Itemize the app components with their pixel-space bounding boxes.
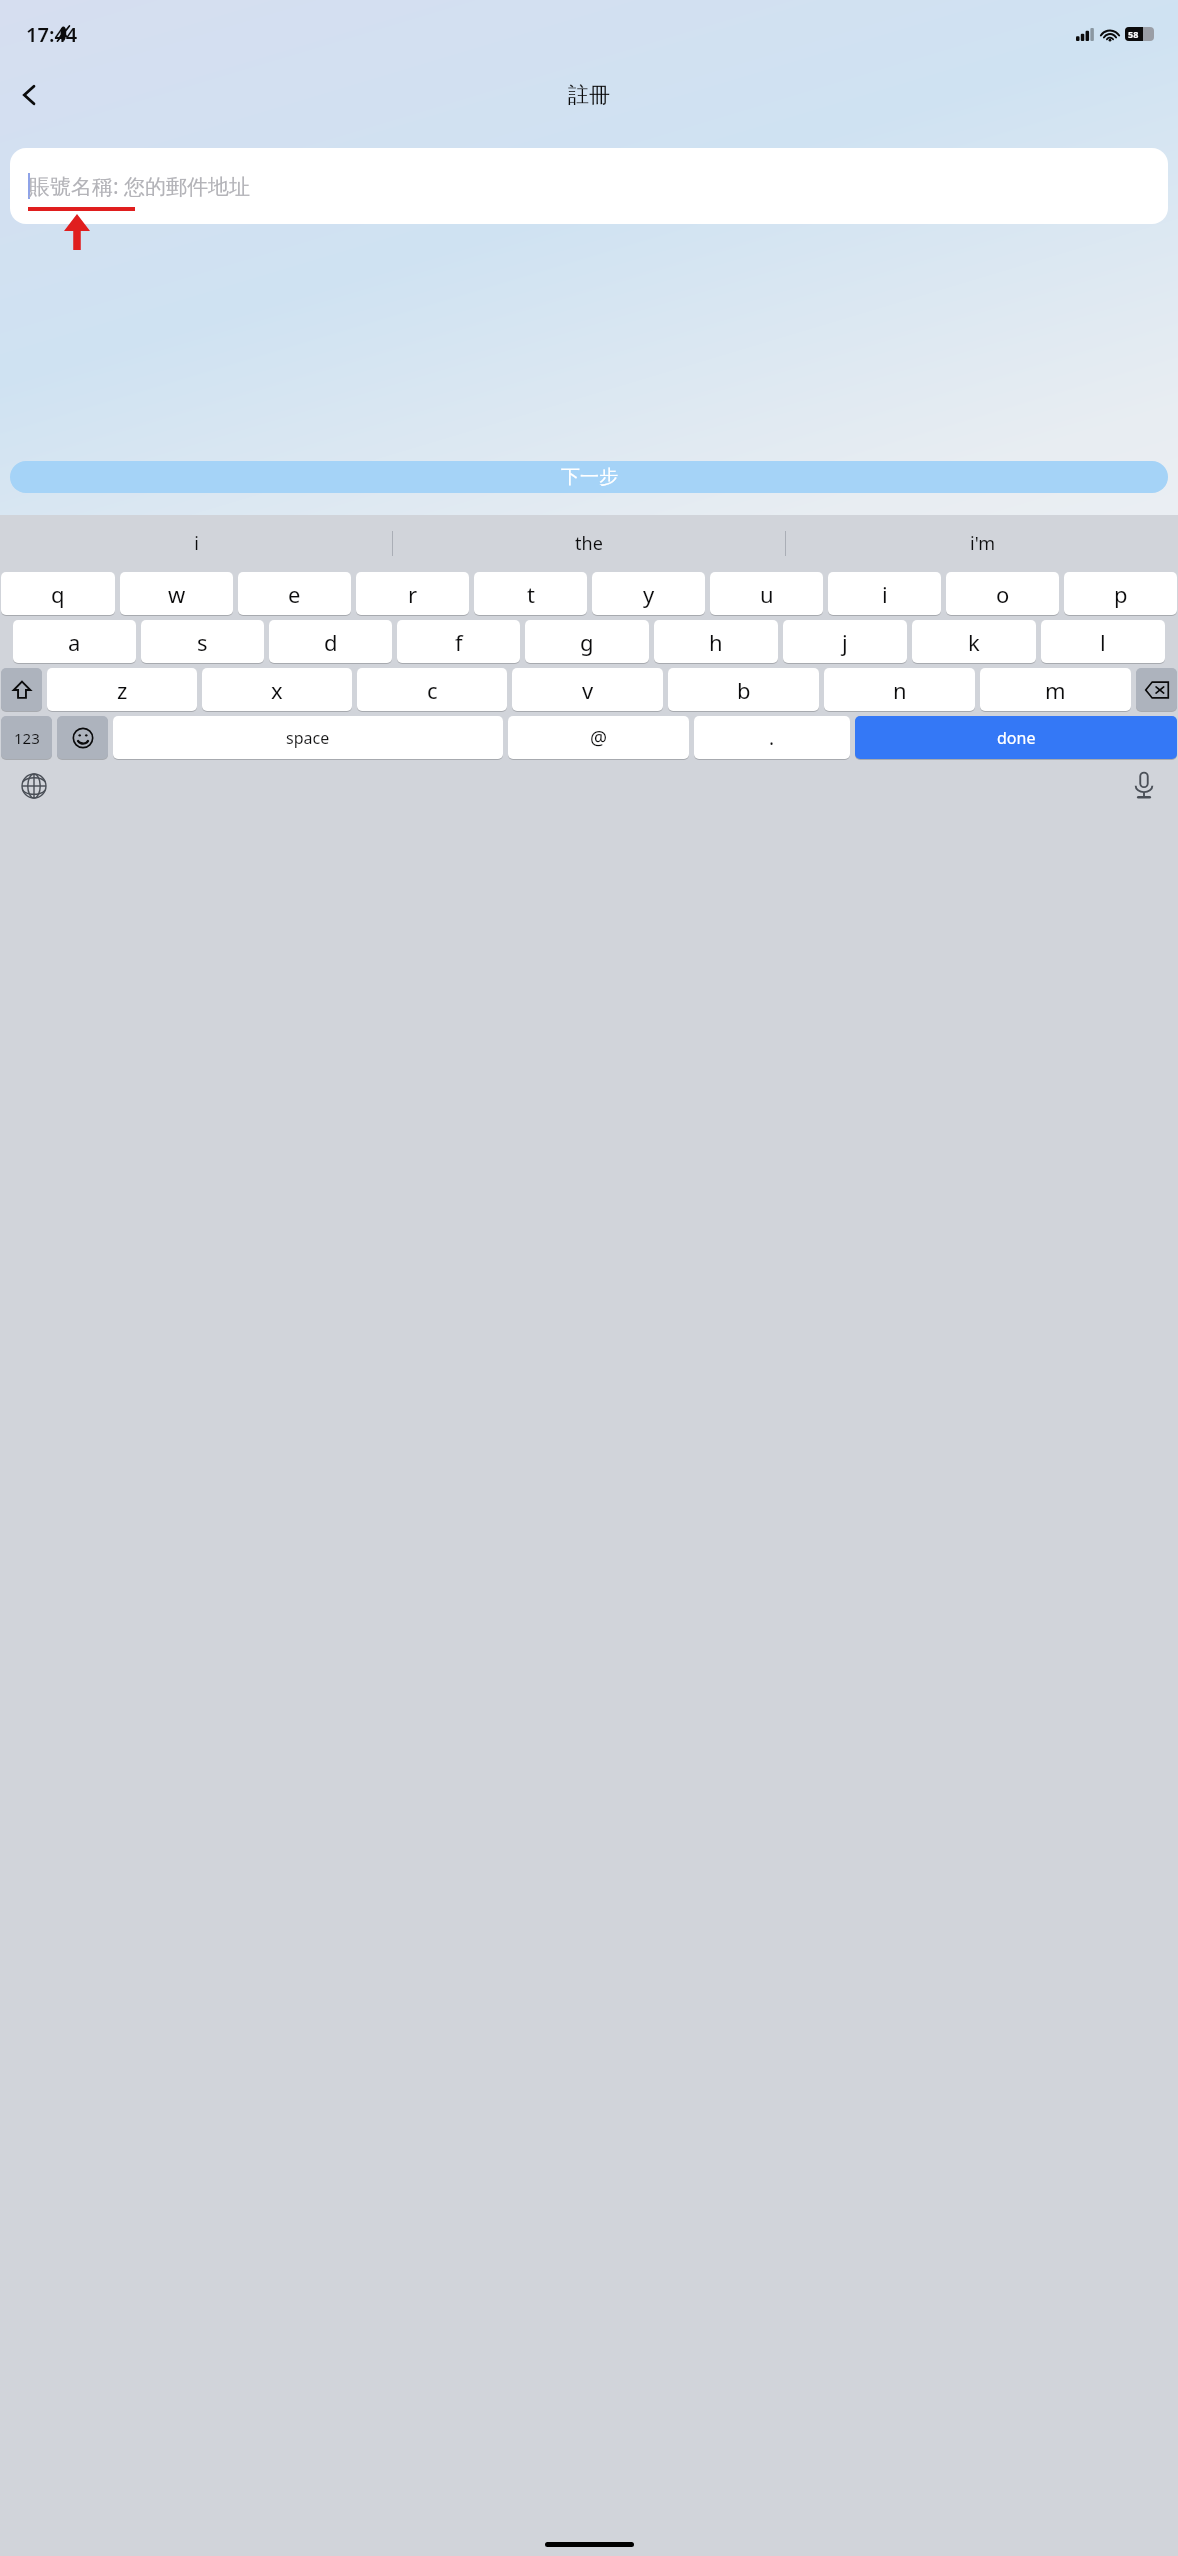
staticText: s [197, 627, 208, 657]
button[interactable]: Numbers [1, 716, 52, 759]
staticText: 下一步 [561, 465, 618, 489]
button[interactable]: 下一步 [10, 461, 1168, 493]
staticText: the [575, 531, 603, 556]
button[interactable]: s [141, 620, 264, 663]
staticText: 58 [1128, 28, 1139, 40]
button[interactable]: a [13, 620, 136, 663]
staticText: j [842, 627, 848, 657]
staticText: x [271, 675, 283, 705]
staticText: q [51, 579, 65, 609]
staticText: i'm [970, 531, 995, 556]
button[interactable]: x [202, 668, 352, 711]
button[interactable]: i [0, 515, 392, 572]
button[interactable]: c [357, 668, 507, 711]
button[interactable]: e [238, 572, 351, 615]
staticText: t [527, 579, 535, 609]
staticText: i [882, 579, 888, 609]
staticText: r [408, 579, 418, 609]
staticText: u [760, 579, 774, 609]
staticText: @ [590, 725, 608, 751]
button[interactable]: Change keyboard [12, 764, 56, 808]
staticText: w [168, 579, 186, 609]
button[interactable]: i'm [786, 515, 1178, 572]
staticText: 賬號名稱: 您的郵件地址 [29, 172, 251, 201]
button[interactable]: p [1064, 572, 1177, 615]
staticText: g [580, 627, 594, 657]
staticText: f [455, 627, 463, 657]
staticText: 17:44 [26, 21, 78, 48]
button[interactable]: u [710, 572, 823, 615]
button[interactable]: Dictate [1122, 764, 1166, 808]
button[interactable]: y [592, 572, 705, 615]
button[interactable]: h [654, 620, 778, 663]
staticText: b [737, 675, 751, 705]
button[interactable]: l [1041, 620, 1165, 663]
button[interactable]: done [855, 716, 1177, 759]
staticText: n [893, 675, 907, 705]
staticText: done [997, 727, 1036, 749]
button[interactable]: Backspace [1136, 668, 1177, 711]
staticText: 123 [14, 728, 40, 748]
staticText: z [117, 675, 128, 705]
button[interactable]: i [828, 572, 941, 615]
button[interactable]: d [269, 620, 392, 663]
staticText: o [996, 579, 1010, 609]
button[interactable]: Emoji [57, 716, 108, 759]
staticText: h [709, 627, 723, 657]
button[interactable]: o [946, 572, 1059, 615]
button[interactable]: m [980, 668, 1131, 711]
staticText: c [427, 675, 438, 705]
staticText: a [68, 627, 81, 657]
staticText: space [286, 727, 330, 749]
button[interactable]: j [783, 620, 907, 663]
staticText: m [1045, 675, 1066, 705]
button[interactable]: w [120, 572, 233, 615]
button[interactable]: space [113, 716, 503, 759]
staticText: l [1100, 627, 1106, 657]
staticText: k [968, 627, 980, 657]
button[interactable]: Shift [1, 668, 42, 711]
staticText: p [1114, 579, 1128, 609]
staticText: . [769, 725, 775, 751]
staticText: 註冊 [568, 82, 610, 108]
button[interactable]: 賬號名稱: 您的郵件地址 [10, 148, 1168, 224]
staticText: y [643, 579, 655, 609]
button[interactable]: f [397, 620, 520, 663]
button[interactable]: Back [6, 71, 54, 119]
button[interactable]: . [694, 716, 850, 759]
button[interactable]: z [47, 668, 197, 711]
staticText: e [288, 579, 301, 609]
button[interactable]: k [912, 620, 1036, 663]
button[interactable]: @ [508, 716, 689, 759]
button[interactable]: q [1, 572, 115, 615]
button[interactable]: r [356, 572, 469, 615]
button[interactable]: v [512, 668, 663, 711]
staticText: d [324, 627, 338, 657]
button[interactable]: g [525, 620, 649, 663]
staticText: v [582, 675, 594, 705]
button[interactable]: n [824, 668, 975, 711]
button[interactable]: the [393, 515, 785, 572]
button[interactable]: b [668, 668, 819, 711]
staticText: i [194, 531, 199, 556]
button[interactable]: t [474, 572, 587, 615]
